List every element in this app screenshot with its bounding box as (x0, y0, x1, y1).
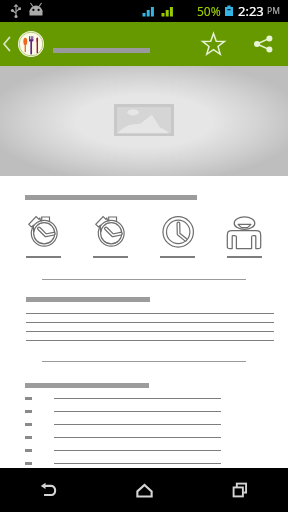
button[interactable]: Recent apps (192, 468, 288, 512)
button[interactable]: Prep time (10, 215, 77, 258)
button[interactable]: Servings (211, 215, 278, 258)
button[interactable]: App logo (18, 31, 44, 57)
button[interactable]: Ingredient (0, 392, 288, 405)
staticText: PM (267, 5, 280, 17)
button[interactable]: Ingredient (0, 431, 288, 444)
button[interactable]: Total time (144, 215, 211, 258)
button[interactable]: Share (241, 22, 285, 66)
staticText: 2:23 (238, 2, 264, 20)
button[interactable]: Ingredient (0, 418, 288, 431)
button[interactable]: Ingredient (0, 405, 288, 418)
button[interactable]: Ingredient (0, 457, 288, 470)
button[interactable]: Back (0, 22, 16, 66)
button[interactable]: Back (0, 468, 96, 512)
staticText: 50% (197, 3, 221, 19)
button[interactable]: Ingredient (0, 444, 288, 457)
button[interactable]: Favorite (191, 22, 235, 66)
button[interactable]: Home (96, 468, 192, 512)
button[interactable]: Cook time (77, 215, 144, 258)
